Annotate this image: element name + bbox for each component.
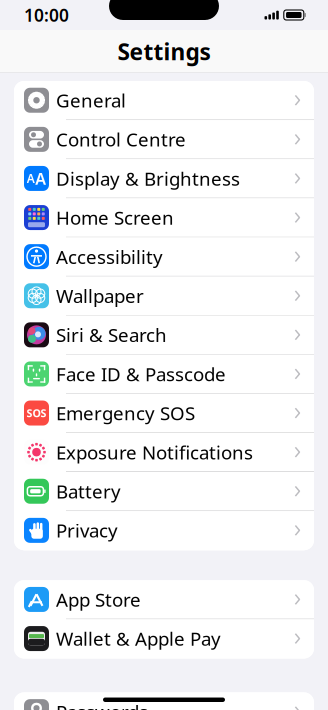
staticText: Wallpaper [56,283,144,308]
button[interactable]: Battery [14,472,314,511]
button[interactable]: Wallet & Apple Pay [14,619,314,658]
button[interactable]: Home Screen [14,198,314,237]
staticText: Face ID & Passcode [56,362,226,386]
button[interactable]: General [14,81,314,120]
staticText: App Store [56,587,141,612]
button[interactable]: Accessibility [14,237,314,276]
staticText: 10:00 [24,3,69,26]
staticText: Privacy [56,518,118,543]
staticText: Accessibility [56,244,163,269]
staticText: Wallet & Apple Pay [56,626,221,651]
staticText: General [56,88,126,113]
button[interactable]: Privacy [14,511,314,550]
button[interactable]: SOS [14,394,314,433]
staticText: Home Screen [56,205,174,230]
staticText: Passwords [56,699,148,710]
staticText: Battery [56,479,121,504]
button[interactable]: Face ID & Passcode [14,355,314,394]
staticText: Control Centre [56,127,186,152]
staticText: Settings [117,36,210,66]
staticText: Exposure Notifications [56,440,253,465]
staticText: A [27,170,35,186]
button[interactable]: Wallpaper [14,276,314,316]
button[interactable]: A [14,159,314,198]
button[interactable]: Siri & Search [14,316,314,355]
staticText: Display & Brightness [56,166,240,191]
staticText: SOS [26,406,46,420]
button[interactable]: Passwords [14,692,314,710]
button[interactable]: Control Centre [14,120,314,159]
staticText: Siri & Search [56,322,167,347]
button[interactable]: App Store [14,580,314,619]
staticText: A [35,168,46,189]
button[interactable]: Exposure Notifications [14,433,314,472]
staticText: Emergency SOS [56,401,195,425]
